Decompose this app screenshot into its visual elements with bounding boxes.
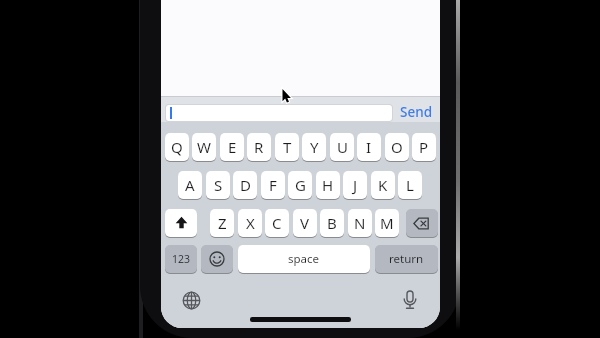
staticText: O bbox=[391, 137, 403, 157]
button[interactable]: J bbox=[343, 171, 367, 199]
button[interactable]: M bbox=[375, 209, 399, 237]
button[interactable]: H bbox=[316, 171, 340, 199]
button[interactable]: W bbox=[192, 133, 216, 161]
staticText: J bbox=[353, 175, 358, 195]
button[interactable]: C bbox=[265, 209, 289, 237]
button[interactable]: E bbox=[220, 133, 244, 161]
button[interactable]: S bbox=[206, 171, 230, 199]
staticText: space bbox=[288, 251, 320, 267]
staticText: M bbox=[380, 213, 394, 233]
staticText: P bbox=[419, 137, 429, 157]
button[interactable] bbox=[165, 209, 197, 237]
staticText: G bbox=[295, 175, 306, 195]
button[interactable]: X bbox=[238, 209, 262, 237]
staticText: D bbox=[240, 175, 251, 195]
staticText: F bbox=[269, 175, 277, 195]
button[interactable]: O bbox=[385, 133, 409, 161]
staticText: C bbox=[272, 213, 282, 233]
staticText: K bbox=[378, 175, 388, 195]
staticText: Z bbox=[218, 213, 227, 233]
button[interactable]: K bbox=[371, 171, 395, 199]
button[interactable]: I bbox=[357, 133, 381, 161]
staticText: H bbox=[322, 175, 334, 195]
button[interactable]: P bbox=[412, 133, 436, 161]
staticText: X bbox=[246, 213, 255, 233]
staticText: N bbox=[354, 213, 366, 233]
staticText: A bbox=[185, 175, 195, 195]
staticText: 123 bbox=[172, 252, 191, 266]
staticText: Y bbox=[310, 137, 319, 157]
button[interactable]: Q bbox=[165, 133, 189, 161]
button[interactable]: T bbox=[275, 133, 299, 161]
button[interactable]: space bbox=[238, 245, 370, 273]
button[interactable]: G bbox=[288, 171, 312, 199]
staticText: Q bbox=[171, 137, 183, 157]
staticText: R bbox=[254, 137, 264, 157]
button[interactable]: B bbox=[320, 209, 344, 237]
staticText: U bbox=[337, 137, 348, 157]
staticText: E bbox=[228, 137, 237, 157]
button[interactable]: U bbox=[330, 133, 354, 161]
staticText: L bbox=[406, 175, 414, 195]
button[interactable]: Send bbox=[397, 102, 435, 121]
button[interactable]: D bbox=[233, 171, 257, 199]
button[interactable]: V bbox=[293, 209, 317, 237]
staticText: B bbox=[327, 213, 337, 233]
button[interactable]: F bbox=[261, 171, 285, 199]
button[interactable]: Y bbox=[302, 133, 326, 161]
button[interactable]: 123 bbox=[165, 245, 197, 273]
button[interactable]: R bbox=[247, 133, 271, 161]
button[interactable] bbox=[165, 104, 393, 122]
staticText: V bbox=[300, 213, 310, 233]
staticText: Send bbox=[400, 103, 433, 121]
button[interactable]: L bbox=[398, 171, 422, 199]
button[interactable]: Z bbox=[210, 209, 234, 237]
staticText: return bbox=[389, 251, 424, 267]
button[interactable]: return bbox=[375, 245, 438, 273]
button[interactable] bbox=[201, 245, 233, 273]
button[interactable] bbox=[182, 291, 201, 310]
staticText: T bbox=[283, 137, 292, 157]
button[interactable]: A bbox=[178, 171, 202, 199]
button[interactable] bbox=[401, 290, 419, 311]
button[interactable]: N bbox=[348, 209, 372, 237]
staticText: W bbox=[197, 137, 211, 157]
button[interactable] bbox=[406, 209, 438, 237]
staticText: I bbox=[366, 137, 372, 157]
staticText: S bbox=[214, 175, 223, 195]
